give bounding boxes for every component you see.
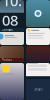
button[interactable]: 10:08 xyxy=(0,0,24,27)
staticText: Contacts xyxy=(1,28,12,32)
staticText: Monday, June 3 xyxy=(1,30,23,33)
staticText: Photos xyxy=(1,58,11,62)
button[interactable]: Contacts xyxy=(0,28,24,45)
button[interactable] xyxy=(26,46,50,62)
button[interactable]: Details xyxy=(26,63,50,100)
button[interactable]: Photos xyxy=(0,46,24,62)
staticText: Details xyxy=(33,88,42,91)
staticText: 10:08 xyxy=(2,0,22,30)
button[interactable]: Inbox xyxy=(26,28,50,45)
button[interactable] xyxy=(26,0,50,27)
button[interactable] xyxy=(0,63,24,100)
